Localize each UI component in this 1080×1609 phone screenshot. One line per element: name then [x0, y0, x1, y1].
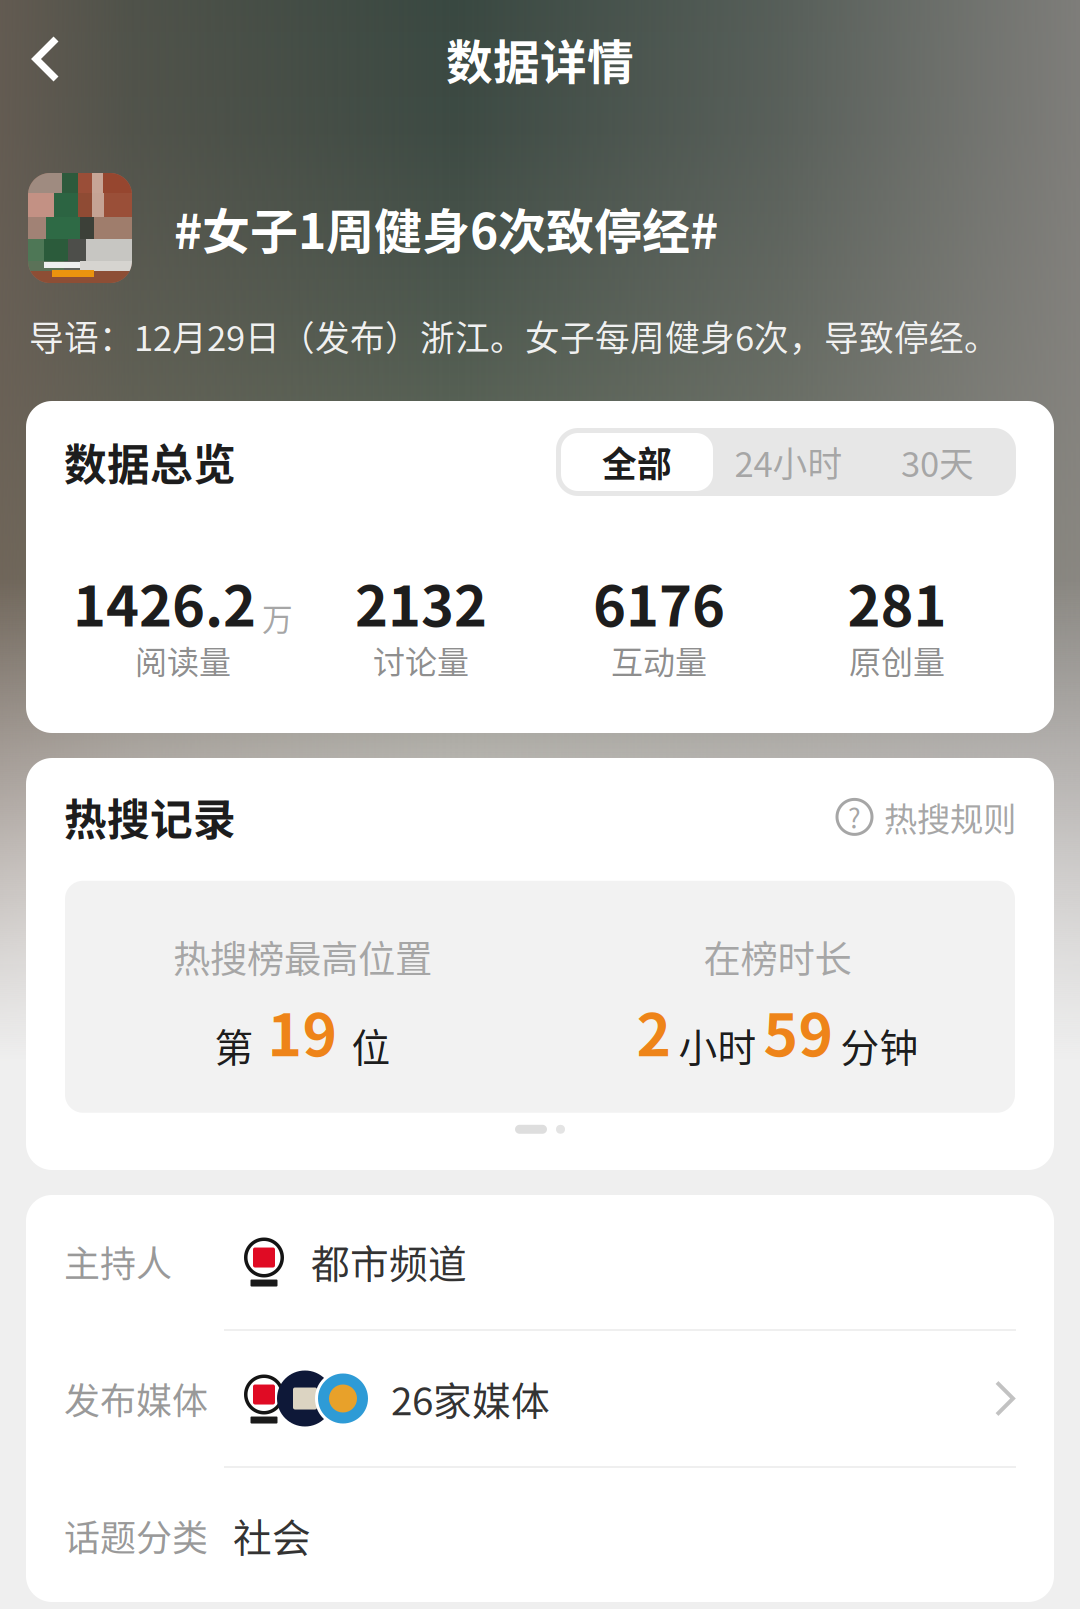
staticText: 分钟 — [840, 1017, 918, 1073]
staticText: 59 — [763, 988, 833, 1073]
button[interactable]: ? — [837, 793, 1016, 841]
staticText: 全部 — [602, 437, 672, 487]
staticText: 281 — [847, 561, 946, 643]
staticText: 2 — [636, 988, 671, 1073]
staticText: 社会 — [233, 1507, 311, 1563]
button[interactable]: 发布媒体 — [64, 1331, 1016, 1466]
staticText: 导语：12月29日（发布）浙江。女子每周健身6次，导致停经。 — [29, 311, 999, 361]
staticText: 发布媒体 — [64, 1372, 208, 1424]
staticText: 互动量 — [611, 637, 707, 683]
staticText: 原创量 — [849, 637, 945, 683]
staticText: 热搜记录 — [64, 786, 236, 848]
button[interactable]: Back — [0, 13, 92, 105]
staticText: 主持人 — [64, 1235, 172, 1287]
staticText: 万 — [262, 595, 293, 639]
staticText: 1426.2 — [73, 561, 256, 643]
staticText: 热搜规则 — [884, 793, 1016, 841]
staticText: ? — [848, 798, 861, 836]
staticText: 在榜时长 — [703, 930, 851, 984]
staticText: 24小时 — [734, 437, 842, 487]
staticText: 26家媒体 — [391, 1370, 550, 1426]
staticText: 数据总览 — [64, 431, 236, 493]
staticText: 19 — [267, 988, 337, 1073]
staticText: 热搜榜最高位置 — [173, 930, 432, 984]
staticText: 讨论量 — [373, 637, 469, 683]
button[interactable]: 30天 — [864, 433, 1011, 491]
staticText: 6176 — [593, 561, 725, 643]
staticText: 都市频道 — [311, 1233, 467, 1289]
staticText: 2132 — [355, 561, 487, 643]
staticText: 第 — [214, 1017, 253, 1073]
button[interactable]: 24小时 — [713, 433, 864, 491]
staticText: 数据详情 — [446, 25, 634, 93]
button[interactable]: 全部 — [561, 433, 713, 491]
staticText: 话题分类 — [64, 1509, 208, 1561]
staticText: 位 — [351, 1017, 390, 1073]
staticText: 小时 — [678, 1017, 756, 1073]
staticText: #女子1周健身6次致停经# — [174, 193, 718, 263]
staticText: 30天 — [901, 437, 974, 487]
staticText: 阅读量 — [135, 637, 231, 683]
